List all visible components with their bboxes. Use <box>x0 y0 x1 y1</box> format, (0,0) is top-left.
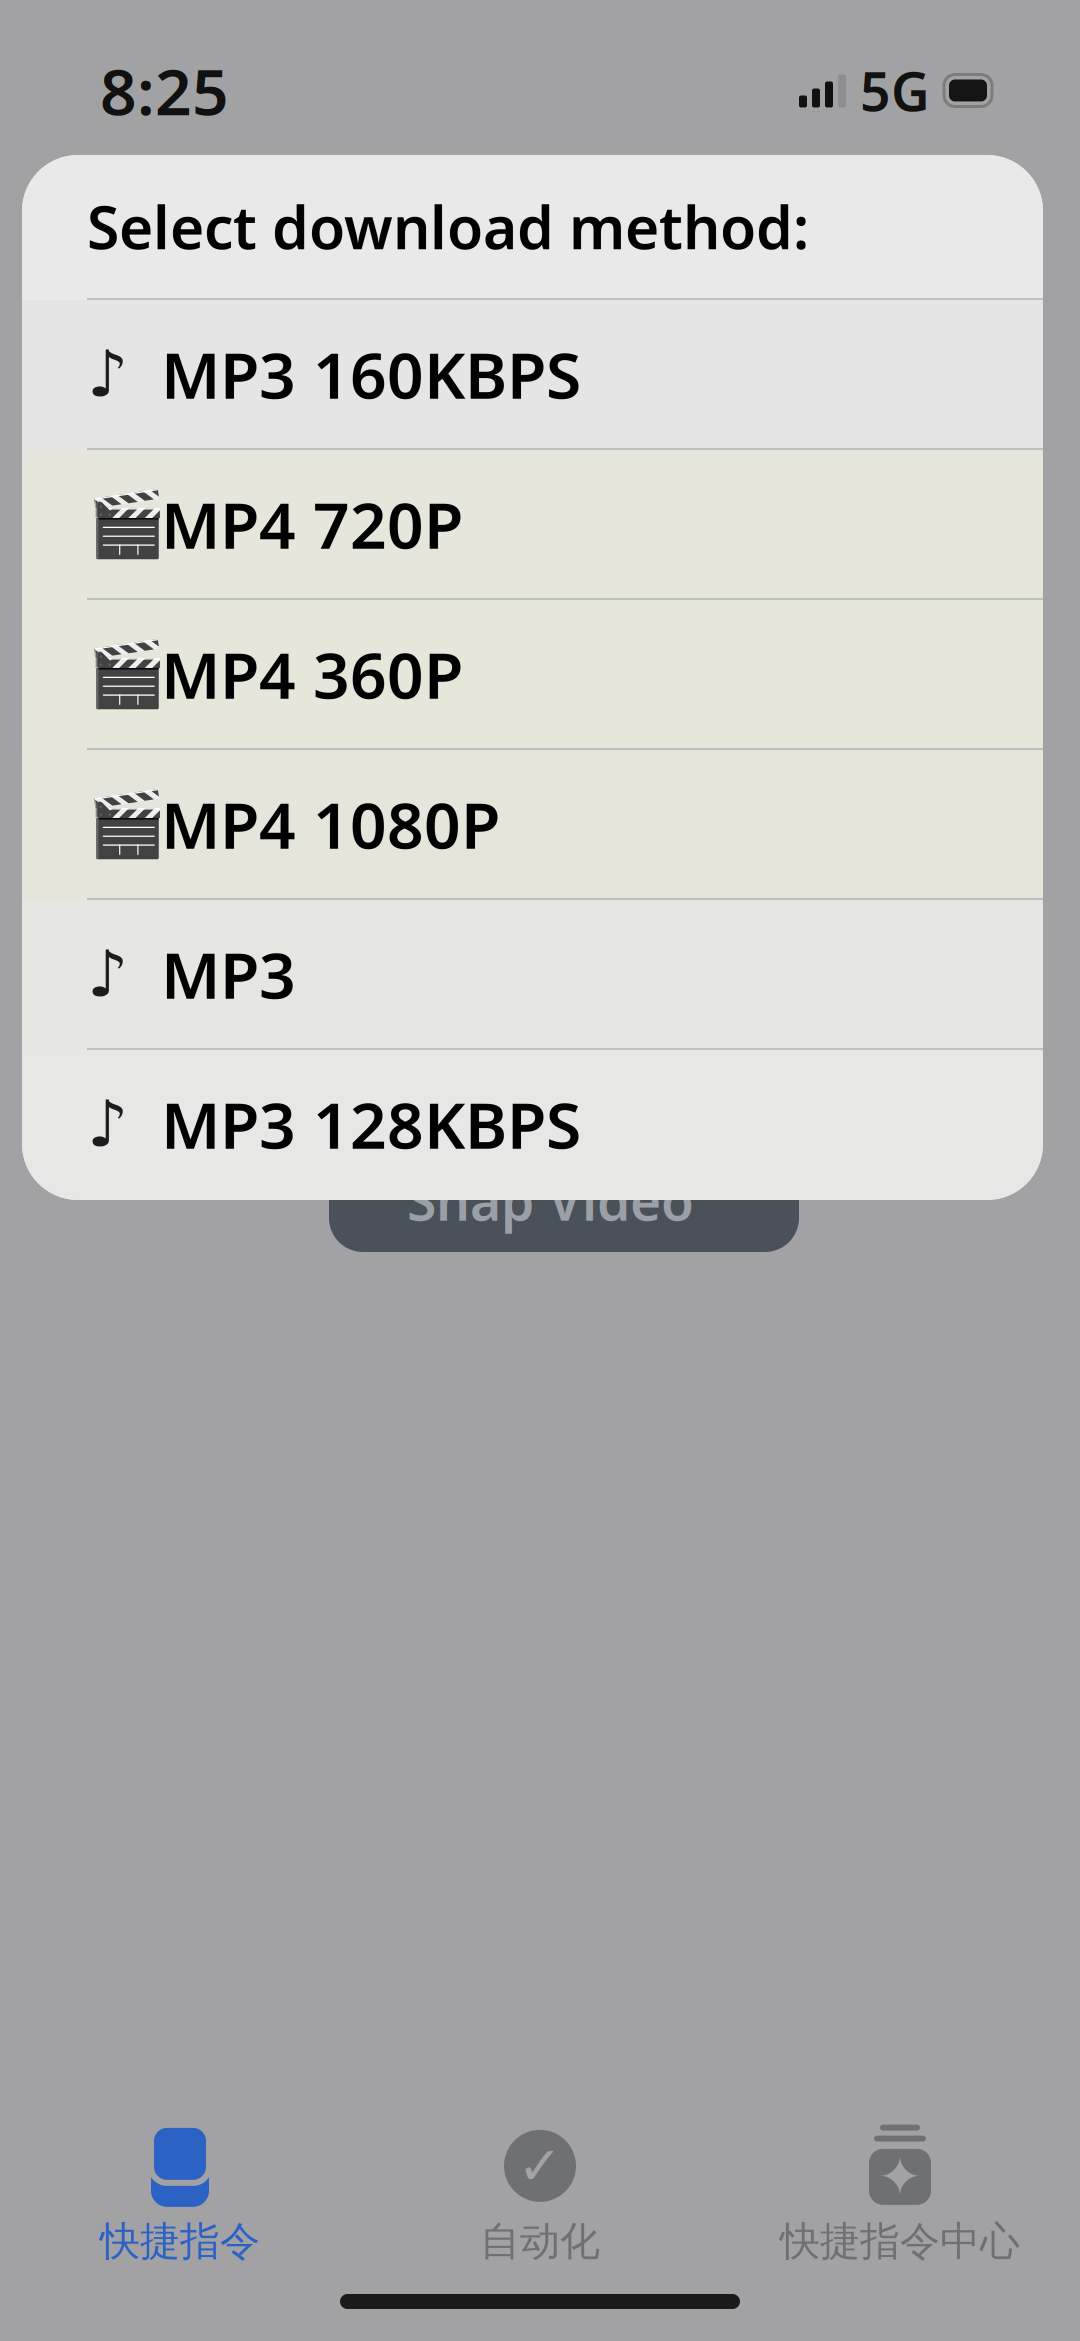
button[interactable]: 🎬 <box>22 750 1043 900</box>
button[interactable]: ♪ <box>22 900 1043 1050</box>
staticText: MP3 160KBPS <box>161 331 581 416</box>
button[interactable]: 快捷指令 <box>0 2117 360 2276</box>
staticText: MP4 360P <box>161 631 463 716</box>
staticText: 🎬 <box>87 787 167 860</box>
staticText: 🎬 <box>87 637 167 710</box>
staticText: 8:25 <box>100 48 229 133</box>
button[interactable]: ✦ <box>720 2117 1080 2276</box>
button[interactable]: ♪ <box>22 300 1043 450</box>
staticText: ♪ <box>87 938 128 1010</box>
staticText: MP3 128KBPS <box>161 1081 581 1166</box>
staticText: Select download method: <box>87 187 809 265</box>
staticText: ♪ <box>87 1088 128 1160</box>
staticText: 🎬 <box>87 487 167 560</box>
button[interactable]: 🎬 <box>22 450 1043 600</box>
staticText: MP4 1080P <box>161 781 500 866</box>
button[interactable]: ✓ <box>360 2117 720 2276</box>
staticText: ✓ <box>517 2136 562 2196</box>
staticText: 快捷指令 <box>100 2217 260 2266</box>
staticText: MP4 720P <box>161 481 463 566</box>
staticText: ♪ <box>87 338 128 410</box>
staticText: 自动化 <box>480 2217 600 2266</box>
staticText: MP3 <box>161 931 296 1016</box>
button[interactable]: 🎬 <box>22 600 1043 750</box>
staticText: 5G <box>860 55 930 126</box>
staticText: Snap Video <box>407 1165 694 1235</box>
staticText: 快捷指令中心 <box>780 2217 1020 2266</box>
staticText: ✦ <box>877 2147 922 2207</box>
button[interactable]: ♪ <box>22 1050 1043 1200</box>
